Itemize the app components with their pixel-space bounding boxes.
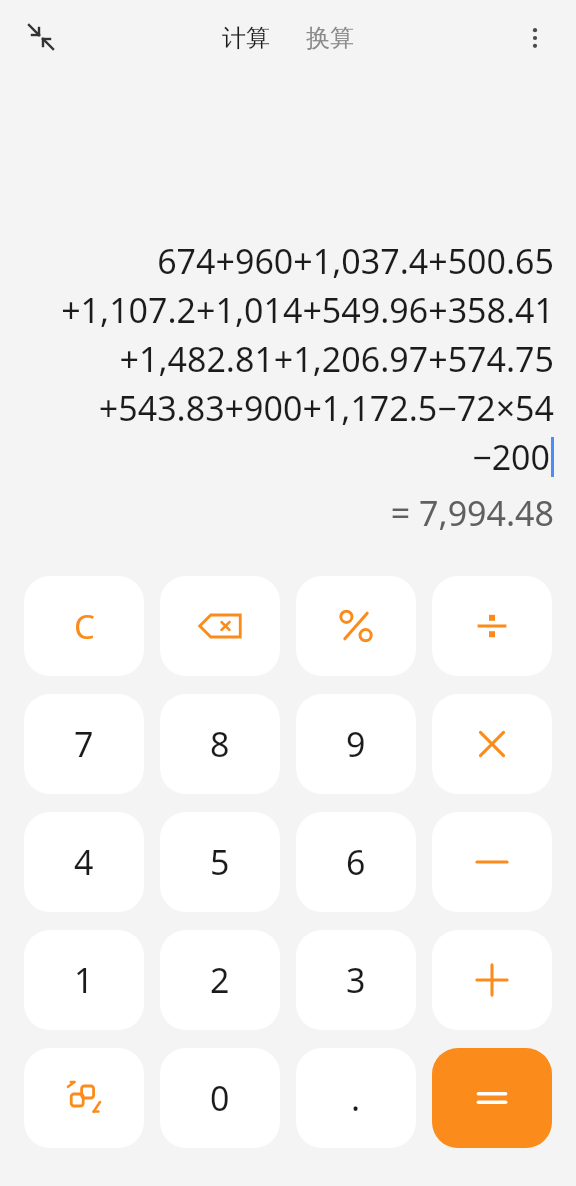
button[interactable]: 1	[24, 930, 144, 1030]
staticText: 2	[210, 957, 230, 1003]
staticText: 0	[210, 1075, 230, 1121]
staticText: 计算	[222, 23, 270, 53]
staticText: 1	[74, 957, 94, 1003]
staticText: 换算	[306, 23, 354, 53]
button[interactable]: C	[24, 576, 144, 676]
button[interactable]: 3	[296, 930, 416, 1030]
button[interactable]: 7	[24, 694, 144, 794]
button[interactable]: Minus	[432, 812, 552, 912]
button[interactable]: 0	[160, 1048, 280, 1148]
staticText: 674+960+1,037.4+500.65	[157, 238, 554, 284]
button[interactable]: 2	[160, 930, 280, 1030]
button[interactable]: 4	[24, 812, 144, 912]
button[interactable]: Scientific mode	[24, 1048, 144, 1148]
staticText: 6	[346, 839, 366, 885]
staticText: +1,482.81+1,206.97+574.75	[119, 336, 554, 382]
staticText: 8	[210, 721, 230, 767]
staticText: −200	[472, 434, 550, 480]
button[interactable]: Multiply	[432, 694, 552, 794]
staticText: 5	[210, 839, 230, 885]
staticText: 7	[74, 721, 94, 767]
button[interactable]: Plus	[432, 930, 552, 1030]
button[interactable]: Percent	[296, 576, 416, 676]
staticText: 3	[346, 957, 366, 1003]
button[interactable]: 计算	[216, 17, 276, 59]
staticText: .	[351, 1075, 361, 1121]
button[interactable]: Collapse	[14, 11, 68, 65]
staticText: +1,107.2+1,014+549.96+358.41	[61, 287, 554, 333]
button[interactable]: 5	[160, 812, 280, 912]
button[interactable]: 8	[160, 694, 280, 794]
button[interactable]: 6	[296, 812, 416, 912]
staticText: = 7,994.48	[390, 490, 554, 536]
button[interactable]: Divide	[432, 576, 552, 676]
button[interactable]: Equals	[432, 1048, 552, 1148]
button[interactable]: 9	[296, 694, 416, 794]
button[interactable]: .	[296, 1048, 416, 1148]
staticText: 4	[74, 839, 94, 885]
button[interactable]: 换算	[300, 17, 360, 59]
staticText: 9	[346, 721, 366, 767]
staticText: +543.83+900+1,172.5−72×54	[98, 385, 554, 431]
button[interactable]: Backspace	[160, 576, 280, 676]
button[interactable]: More options	[508, 11, 562, 65]
staticText: C	[74, 604, 95, 649]
